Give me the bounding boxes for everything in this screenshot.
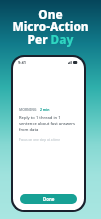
staticText: Done	[43, 196, 55, 202]
staticText: 2 min	[40, 107, 50, 112]
staticText: MORNING	[19, 107, 37, 112]
button[interactable]: Done	[20, 194, 77, 204]
staticText: Focus on one step at a time	[19, 138, 61, 142]
staticText: One Micro-Action Per Day	[0, 6, 101, 47]
staticText: 9:41	[18, 60, 26, 65]
staticText: Reply to 1 thread in 1 sentence about fa…	[19, 115, 76, 133]
